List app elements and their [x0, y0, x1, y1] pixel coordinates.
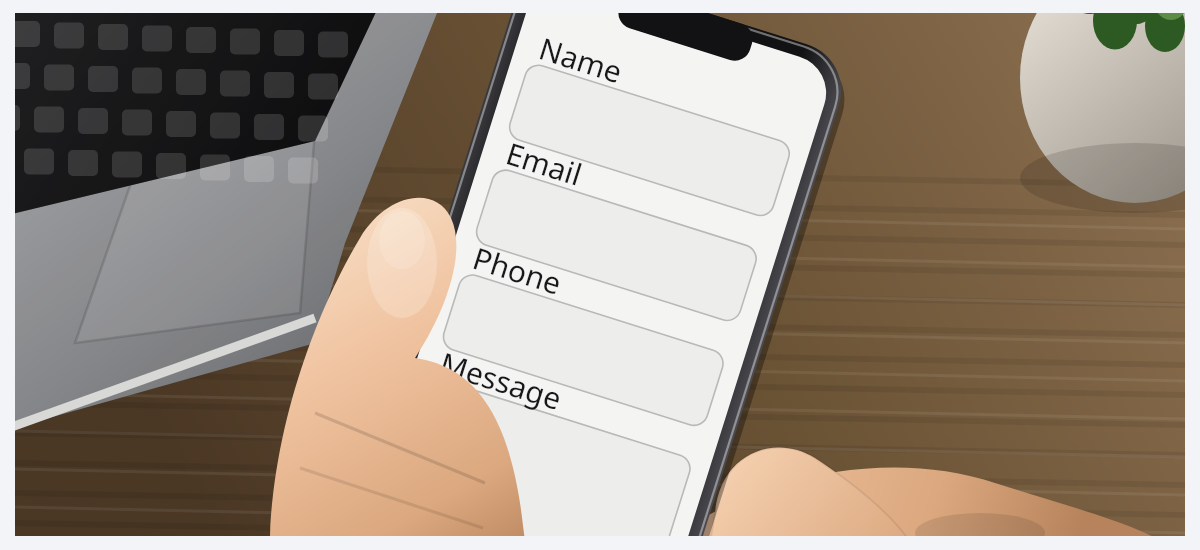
button[interactable]: Contact form on phone, Submit button — [0, 0, 1200, 550]
